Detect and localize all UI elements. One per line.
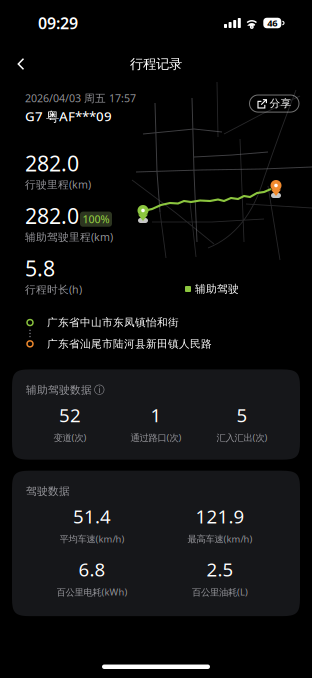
staticText: 121.9	[195, 504, 244, 529]
staticText: 驾驶数据	[26, 485, 70, 498]
staticText: 辅助驾驶数据	[26, 383, 92, 396]
staticText: 辅助驾驶	[195, 282, 239, 295]
staticText: 6.8	[78, 557, 105, 582]
button[interactable]: 返回	[0, 47, 40, 80]
staticText: 辅助驾驶里程(km)	[25, 230, 113, 244]
staticText: 通过路口(次)	[130, 431, 181, 444]
staticText: 51.4	[73, 504, 111, 529]
staticText: 广东省中山市东凤镇怡和街	[47, 316, 179, 329]
staticText: 46	[267, 17, 277, 29]
staticText: 广东省汕尾市陆河县新田镇人民路	[47, 337, 212, 350]
staticText: 行程记录	[130, 56, 182, 72]
staticText: 平均车速(km/h)	[59, 533, 124, 545]
staticText: 282.0	[25, 149, 79, 177]
staticText: 5	[236, 402, 247, 427]
staticText: 1	[150, 402, 161, 427]
staticText: 5.8	[25, 254, 55, 282]
staticText: ⓘ	[94, 383, 105, 396]
button[interactable]: 分享	[249, 95, 299, 112]
staticText: 最高车速(km/h)	[187, 533, 252, 545]
staticText: 变道(次)	[53, 431, 86, 444]
staticText: 09:29	[38, 12, 78, 34]
staticText: 行驶里程(km)	[25, 177, 91, 191]
staticText: 分享	[269, 97, 291, 110]
staticText: 282.0	[25, 201, 79, 230]
staticText: G7 粤AF***09	[25, 107, 112, 125]
staticText: 百公里油耗(L)	[192, 586, 248, 598]
staticText: 2.5	[206, 557, 233, 582]
staticText: 52	[59, 402, 81, 427]
staticText: 百公里电耗(kWh)	[56, 586, 127, 598]
staticText: 汇入汇出(次)	[216, 431, 267, 444]
staticText: 行程时长(h)	[25, 282, 82, 296]
staticText: 100%	[82, 212, 109, 226]
staticText: 2026/04/03 周五 17:57	[25, 91, 136, 105]
